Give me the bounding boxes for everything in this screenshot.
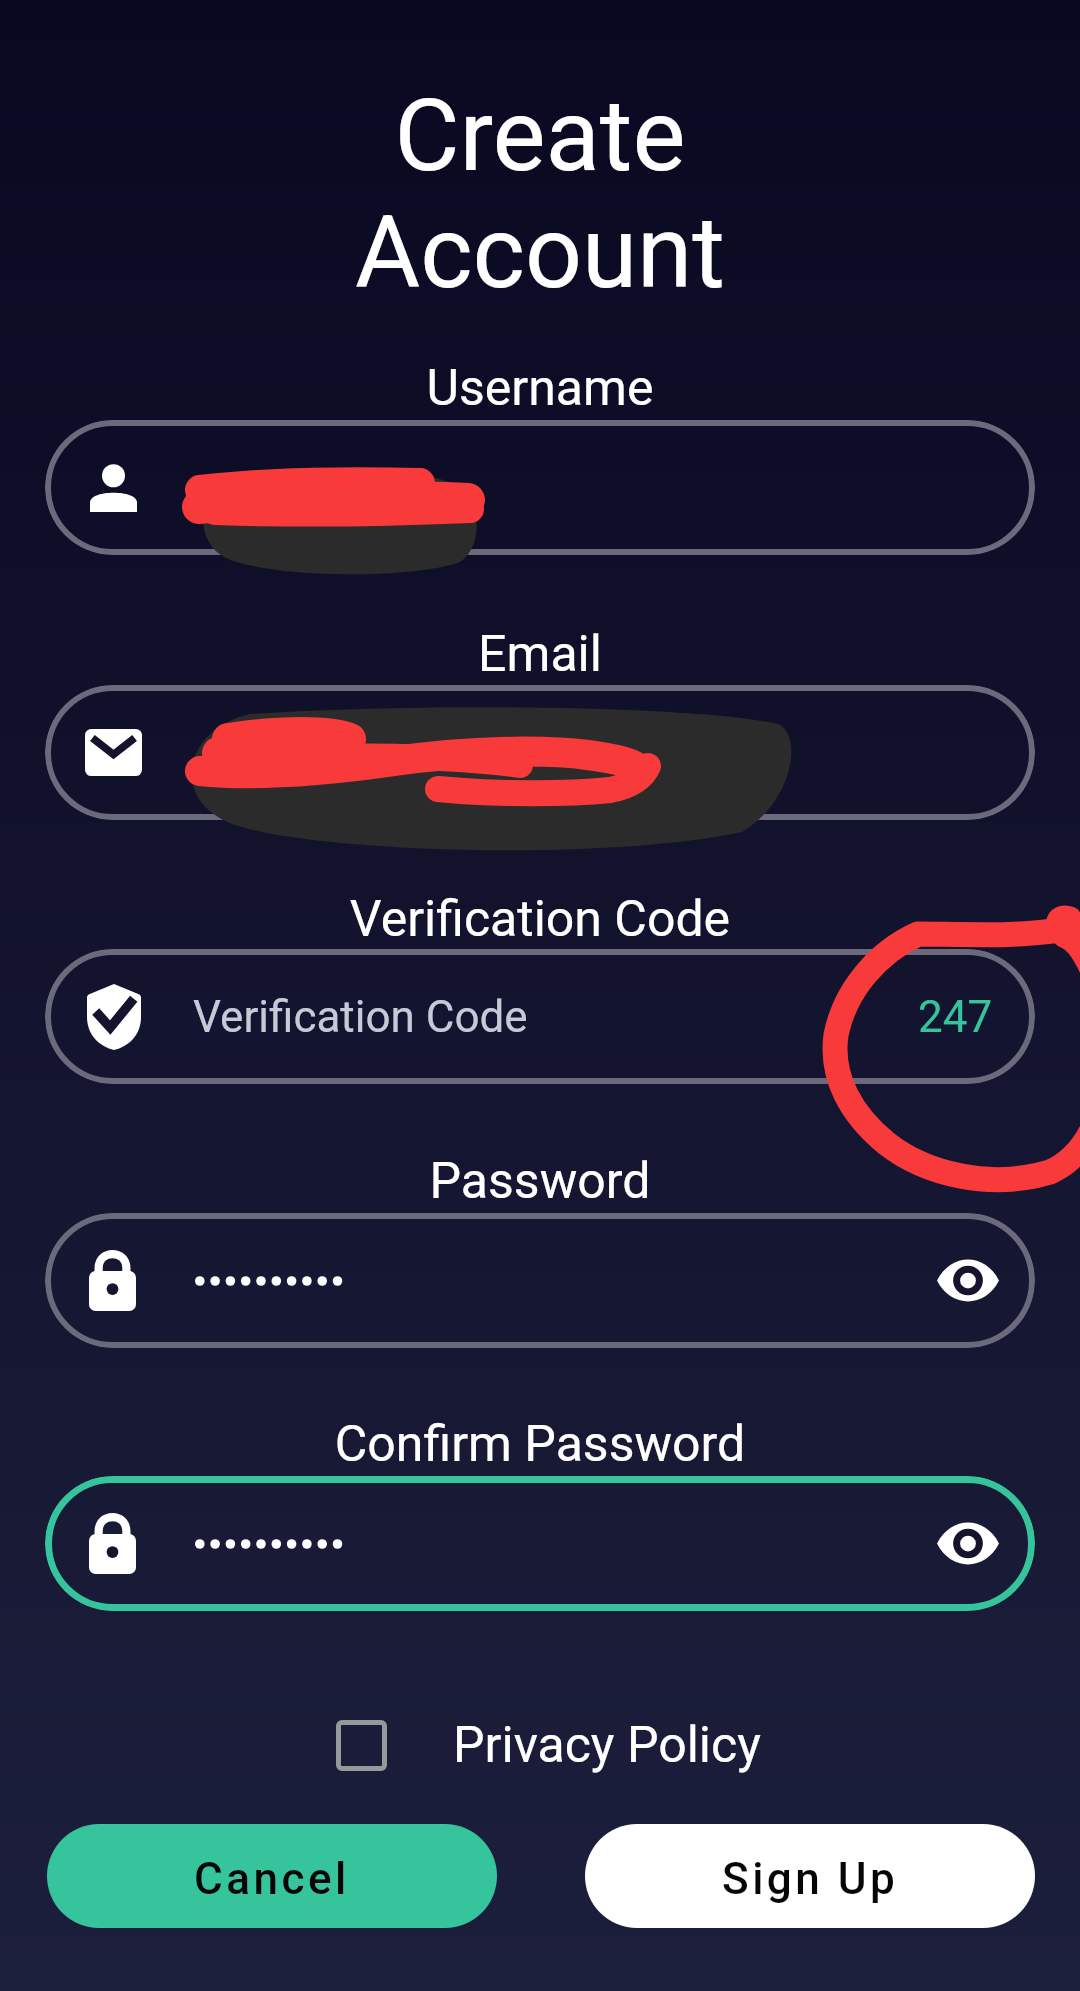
button[interactable]: Verification Code — [45, 949, 1035, 1084]
staticText: Password — [0, 1152, 1080, 1211]
other: Toggle password visibility — [937, 1521, 999, 1566]
button[interactable]: Cancel — [47, 1824, 497, 1928]
staticText: 247 — [918, 991, 993, 1043]
other: Toggle password visibility — [937, 1258, 999, 1303]
staticText: Create Account — [0, 77, 1080, 312]
staticText: Cancel — [194, 1853, 350, 1905]
button[interactable]: Toggle password visibility — [45, 1476, 1035, 1611]
staticText: Username — [0, 359, 1080, 418]
staticText: Sign Up — [722, 1853, 899, 1905]
staticText: Verification Code — [0, 890, 1080, 949]
staticText: Verification Code — [193, 991, 528, 1043]
staticText: Email — [0, 625, 1080, 684]
button[interactable]: Accept privacy policy — [336, 1716, 761, 1775]
button[interactable]: Username — [45, 420, 1035, 555]
button[interactable]: Sign Up — [585, 1824, 1035, 1928]
other: Accept privacy policy — [336, 1720, 387, 1771]
button[interactable]: Email — [45, 685, 1035, 820]
button[interactable]: Toggle password visibility — [45, 1213, 1035, 1348]
staticText: Privacy Policy — [453, 1716, 761, 1775]
staticText: Confirm Password — [0, 1415, 1080, 1474]
